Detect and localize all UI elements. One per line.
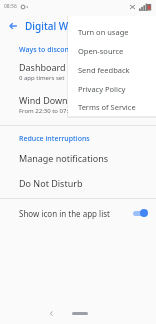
staticText: Dashboard — [19, 61, 66, 73]
staticText: Do Not Disturb — [19, 177, 83, 189]
button[interactable]: Home — [72, 312, 88, 315]
button[interactable]: Open-source licences — [68, 41, 156, 60]
staticText: 0 app timers set — [19, 74, 65, 82]
staticText: Reduce interruptions — [19, 134, 90, 144]
staticText: Wind Down — [19, 94, 68, 106]
button[interactable]: Show icon in the app list — [0, 203, 156, 223]
button[interactable]: Manage notifications — [0, 151, 156, 165]
button[interactable]: Turn on usage access — [68, 22, 156, 41]
button[interactable]: Wind Down — [0, 93, 156, 116]
staticText: Open-source licences — [78, 46, 152, 56]
staticText: Manage notifications — [19, 152, 109, 164]
button[interactable]: Back — [4, 17, 22, 35]
staticText: Turn on usage access — [78, 27, 152, 37]
staticText: Digital Wellbeing — [25, 19, 107, 33]
staticText: Show icon in the app list — [19, 208, 128, 219]
button[interactable]: Back — [44, 306, 58, 320]
staticText: Privacy Policy — [78, 84, 126, 94]
button[interactable]: Do Not Disturb — [0, 176, 156, 190]
staticText: 08:56 — [4, 3, 17, 10]
staticText: From 22:30 to 07:00 — [19, 107, 75, 115]
staticText: Send feedback — [78, 65, 130, 75]
button[interactable]: Terms of Service — [68, 98, 156, 116]
button[interactable]: Privacy Policy — [68, 79, 156, 98]
button[interactable]: Dashboard — [0, 60, 156, 83]
button[interactable]: Send feedback — [68, 60, 156, 79]
staticText: Terms of Service — [78, 102, 136, 112]
staticText: Ways to disconnect — [19, 45, 84, 55]
